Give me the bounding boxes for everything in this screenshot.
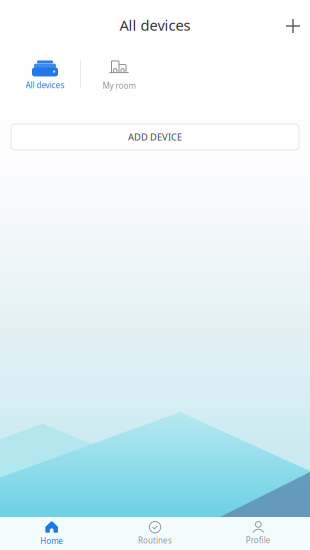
staticText: All devices: [25, 80, 64, 90]
staticText: All devices: [119, 15, 190, 35]
staticText: Routines: [138, 535, 172, 546]
staticText: ADD DEVICE: [128, 131, 182, 143]
staticText: Profile: [246, 535, 271, 545]
button[interactable]: Profile: [207, 521, 310, 545]
button[interactable]: All devices: [10, 59, 80, 89]
button[interactable]: Add device: [276, 5, 310, 45]
staticText: Home: [40, 536, 63, 546]
button[interactable]: ADD DEVICE: [11, 124, 299, 150]
button[interactable]: Home: [0, 521, 103, 546]
button[interactable]: Routines: [103, 521, 207, 546]
button[interactable]: My room: [81, 59, 151, 89]
staticText: My room: [102, 80, 135, 91]
